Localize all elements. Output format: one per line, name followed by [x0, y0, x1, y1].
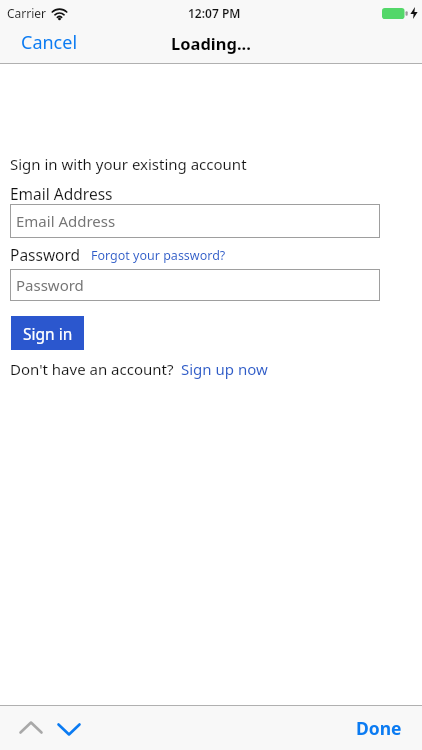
staticText: Cancel [21, 30, 78, 55]
staticText: 12:07 PM [188, 5, 241, 21]
staticText: Don't have an account? [10, 359, 174, 379]
button[interactable]: Password [10, 269, 380, 301]
staticText: Email Address [16, 211, 116, 231]
button[interactable]: Sign in [11, 316, 84, 350]
button[interactable]: Cancel [0, 26, 88, 63]
staticText: Password [10, 244, 81, 265]
staticText: Sign up now [181, 359, 268, 379]
staticText: Loading... [171, 32, 251, 54]
button[interactable] [19, 721, 43, 734]
staticText: Sign in [23, 323, 73, 344]
staticText: Sign in with your existing account [10, 154, 247, 174]
staticText: Password [16, 275, 84, 295]
button[interactable]: Sign up now [181, 359, 268, 379]
staticText: Email Address [10, 183, 113, 204]
button[interactable]: Forgot your password? [91, 247, 226, 265]
button[interactable] [57, 721, 81, 734]
staticText: Forgot your password? [91, 247, 226, 264]
staticText: Carrier [7, 5, 47, 21]
staticText: Done [356, 716, 402, 740]
button[interactable]: Done [356, 716, 422, 740]
button[interactable]: Email Address [10, 204, 380, 238]
